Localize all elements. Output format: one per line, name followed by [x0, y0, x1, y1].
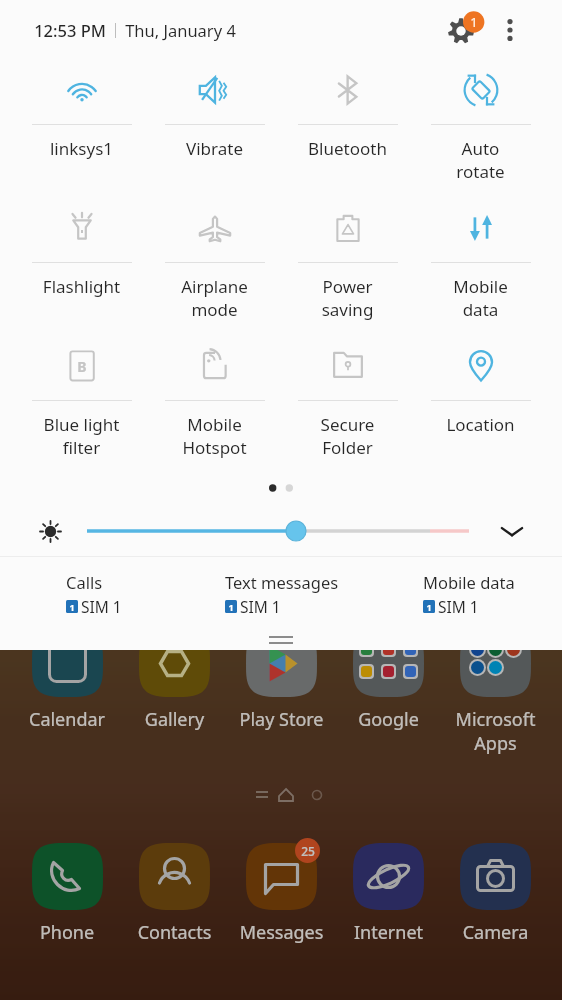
button[interactable]: Text messages: [188, 557, 375, 629]
button[interactable]: Brightness: [80, 514, 480, 548]
staticText: Airplane mode: [148, 275, 281, 321]
button[interactable]: 25: [228, 843, 335, 945]
staticText: Internet: [335, 920, 442, 945]
button[interactable]: B: [15, 332, 148, 470]
staticText: Power saving: [281, 275, 414, 321]
button[interactable]: Power saving: [281, 194, 414, 332]
staticText: Mobile data: [414, 275, 547, 321]
staticText: Google: [335, 707, 442, 732]
staticText: Flashlight: [15, 275, 148, 298]
staticText: SIM 1: [438, 596, 479, 617]
staticText: 1: [69, 601, 75, 613]
button[interactable]: Airplane mode: [148, 194, 281, 332]
staticText: Vibrate: [148, 137, 281, 160]
button[interactable]: Location: [414, 332, 547, 470]
staticText: 12:53 PM: [34, 19, 106, 41]
staticText: Contacts: [121, 920, 228, 945]
button[interactable]: Microsoft Apps: [442, 630, 549, 755]
staticText: B: [77, 357, 87, 376]
staticText: Phone: [13, 920, 121, 945]
staticText: Messages: [228, 920, 335, 945]
staticText: 1: [470, 13, 478, 31]
staticText: 25: [301, 843, 315, 859]
button[interactable]: Contacts: [121, 843, 228, 945]
staticText: Microsoft Apps: [442, 707, 549, 755]
staticText: Secure Folder: [281, 413, 414, 459]
staticText: Text messages: [225, 571, 339, 593]
staticText: Mobile Hotspot: [148, 413, 281, 459]
button[interactable]: Camera: [442, 843, 549, 945]
button[interactable]: Flashlight: [15, 194, 148, 332]
button[interactable]: Settings: [441, 6, 485, 50]
button[interactable]: Calls: [0, 557, 188, 629]
staticText: Gallery: [121, 707, 228, 732]
staticText: Location: [414, 413, 547, 436]
staticText: Bluetooth: [281, 137, 414, 160]
button[interactable]: Mobile data: [375, 557, 562, 629]
staticText: Calls: [66, 571, 103, 593]
button[interactable]: Mobile Hotspot: [148, 332, 281, 470]
staticText: Blue light filter: [15, 413, 148, 459]
staticText: SIM 1: [240, 596, 281, 617]
staticText: 1: [426, 601, 432, 613]
staticText: Mobile data: [423, 571, 515, 593]
staticText: SIM 1: [81, 596, 122, 617]
staticText: 1: [228, 601, 234, 613]
button[interactable]: Bluetooth: [281, 56, 414, 194]
button[interactable]: Vibrate: [148, 56, 281, 194]
staticText: Auto rotate: [414, 137, 547, 183]
button[interactable]: Mobile data: [414, 194, 547, 332]
button[interactable]: Expand quick settings: [490, 509, 534, 553]
button[interactable]: More options: [492, 12, 528, 48]
staticText: linksys1: [15, 137, 148, 160]
button[interactable]: Phone: [13, 843, 121, 945]
button[interactable]: Secure Folder: [281, 332, 414, 470]
staticText: Thu, January 4: [125, 19, 236, 41]
button[interactable]: Calendar: [13, 630, 121, 732]
button[interactable]: Internet: [335, 843, 442, 945]
staticText: Play Store: [228, 707, 335, 732]
button[interactable]: Google: [335, 630, 442, 732]
button[interactable]: Play Store: [228, 630, 335, 732]
button[interactable]: linksys1: [15, 56, 148, 194]
staticText: Calendar: [13, 707, 121, 732]
button[interactable]: Gallery: [121, 630, 228, 732]
staticText: Camera: [442, 920, 549, 945]
button[interactable]: Auto rotate: [414, 56, 547, 194]
